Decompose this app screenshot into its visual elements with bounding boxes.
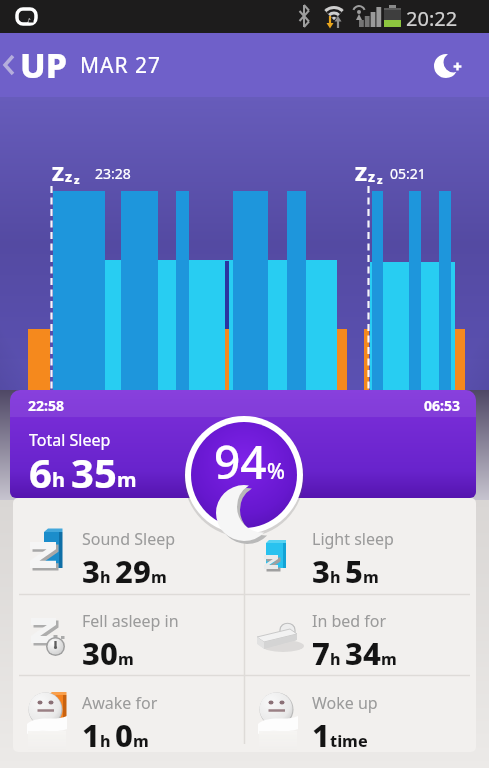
- staticText: 1: [82, 714, 100, 752]
- staticText: Light sleep: [312, 528, 394, 550]
- staticText: m: [118, 648, 134, 670]
- staticText: Woke up: [312, 692, 378, 714]
- staticText: Fell asleep in: [82, 610, 179, 632]
- staticText: MAR 27: [80, 51, 162, 80]
- staticText: Total Sleep: [29, 429, 111, 451]
- staticText: Z: [52, 160, 64, 187]
- button[interactable]: [13, 498, 244, 594]
- staticText: 30: [82, 632, 118, 674]
- staticText: h: [330, 648, 345, 670]
- staticText: 94: [214, 430, 267, 493]
- staticText: m: [381, 648, 397, 670]
- staticText: 34: [345, 632, 381, 674]
- staticText: m: [117, 466, 137, 493]
- staticText: Z: [355, 160, 367, 187]
- staticText: 35: [71, 445, 117, 498]
- button[interactable]: UP: [20, 33, 162, 97]
- staticText: 5: [345, 550, 363, 592]
- staticText: z: [74, 172, 80, 187]
- staticText: 29: [115, 550, 151, 592]
- staticText: m: [363, 566, 379, 588]
- button[interactable]: [246, 596, 476, 675]
- staticText: 05:21: [390, 164, 426, 183]
- button[interactable]: [13, 596, 244, 675]
- button[interactable]: [246, 498, 476, 594]
- staticText: h: [330, 566, 345, 588]
- staticText: z: [368, 167, 375, 186]
- staticText: 20:22: [406, 5, 458, 32]
- staticText: 3: [82, 550, 100, 592]
- staticText: z: [65, 167, 72, 186]
- staticText: %: [267, 457, 285, 486]
- staticText: z: [377, 172, 383, 187]
- staticText: h: [100, 566, 115, 588]
- button[interactable]: 22:58: [10, 390, 476, 498]
- staticText: 0: [115, 714, 133, 752]
- staticText: In bed for: [312, 610, 387, 632]
- staticText: 06:53: [424, 396, 460, 415]
- button[interactable]: [433, 37, 489, 93]
- staticText: 7: [312, 632, 330, 674]
- staticText: m: [151, 566, 167, 588]
- staticText: time: [330, 730, 368, 752]
- button[interactable]: [13, 677, 244, 752]
- staticText: 1: [312, 714, 330, 752]
- staticText: h: [100, 730, 115, 752]
- staticText: m: [133, 730, 149, 752]
- staticText: Sound Sleep: [82, 528, 176, 550]
- staticText: h: [52, 466, 71, 493]
- staticText: 23:28: [95, 164, 131, 183]
- staticText: 6: [29, 445, 52, 498]
- staticText: Awake for: [82, 692, 158, 714]
- staticText: 22:58: [28, 396, 64, 415]
- staticText: UP: [20, 42, 67, 88]
- staticText: 3: [312, 550, 330, 592]
- button[interactable]: [246, 677, 476, 752]
